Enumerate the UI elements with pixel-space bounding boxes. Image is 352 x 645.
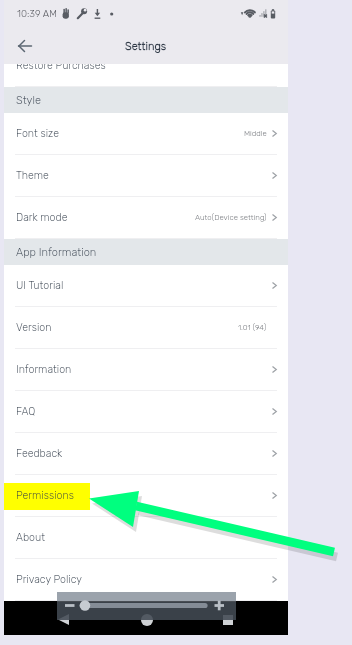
staticText: 1.01 (94) bbox=[238, 323, 267, 332]
staticText: UI Tutorial bbox=[16, 279, 64, 292]
staticText: App Information bbox=[16, 246, 97, 259]
staticText: Version bbox=[16, 321, 52, 334]
button[interactable]: Home bbox=[133, 606, 160, 633]
button[interactable]: Privacy Policy bbox=[4, 559, 288, 600]
staticText: Information bbox=[16, 363, 72, 376]
button[interactable]: Font size bbox=[4, 113, 288, 154]
button[interactable]: FAQ bbox=[4, 391, 288, 432]
button[interactable]: Dark mode bbox=[4, 197, 288, 238]
staticText: Middle bbox=[244, 129, 267, 138]
staticText: Restore Purchases bbox=[16, 64, 106, 72]
button[interactable]: Restore Purchases bbox=[4, 64, 288, 86]
staticText: 10:39 AM bbox=[17, 8, 57, 20]
staticText: Settings bbox=[125, 40, 167, 53]
button[interactable]: Back bbox=[50, 606, 77, 633]
staticText: Auto(Device setting) bbox=[195, 213, 267, 222]
button[interactable]: Back bbox=[11, 32, 39, 60]
button[interactable]: Version bbox=[4, 307, 288, 348]
staticText: Privacy Policy bbox=[16, 573, 82, 586]
button[interactable]: UI Tutorial bbox=[4, 265, 288, 306]
staticText: Permissions bbox=[16, 489, 74, 502]
button[interactable]: Permissions bbox=[4, 475, 288, 516]
staticText: Dark mode bbox=[16, 211, 68, 224]
staticText: Style bbox=[16, 94, 41, 107]
staticText: Theme bbox=[16, 169, 49, 182]
staticText: Feedback bbox=[16, 447, 63, 460]
staticText: FAQ bbox=[16, 405, 36, 418]
button[interactable]: Feedback bbox=[4, 433, 288, 474]
staticText: Font size bbox=[16, 127, 59, 140]
button[interactable]: About bbox=[4, 517, 288, 558]
button[interactable]: Theme bbox=[4, 155, 288, 196]
button[interactable]: Recent apps bbox=[214, 606, 241, 633]
button[interactable]: Information bbox=[4, 349, 288, 390]
button[interactable]: Magnification slider bbox=[57, 592, 236, 620]
staticText: About bbox=[16, 531, 45, 544]
